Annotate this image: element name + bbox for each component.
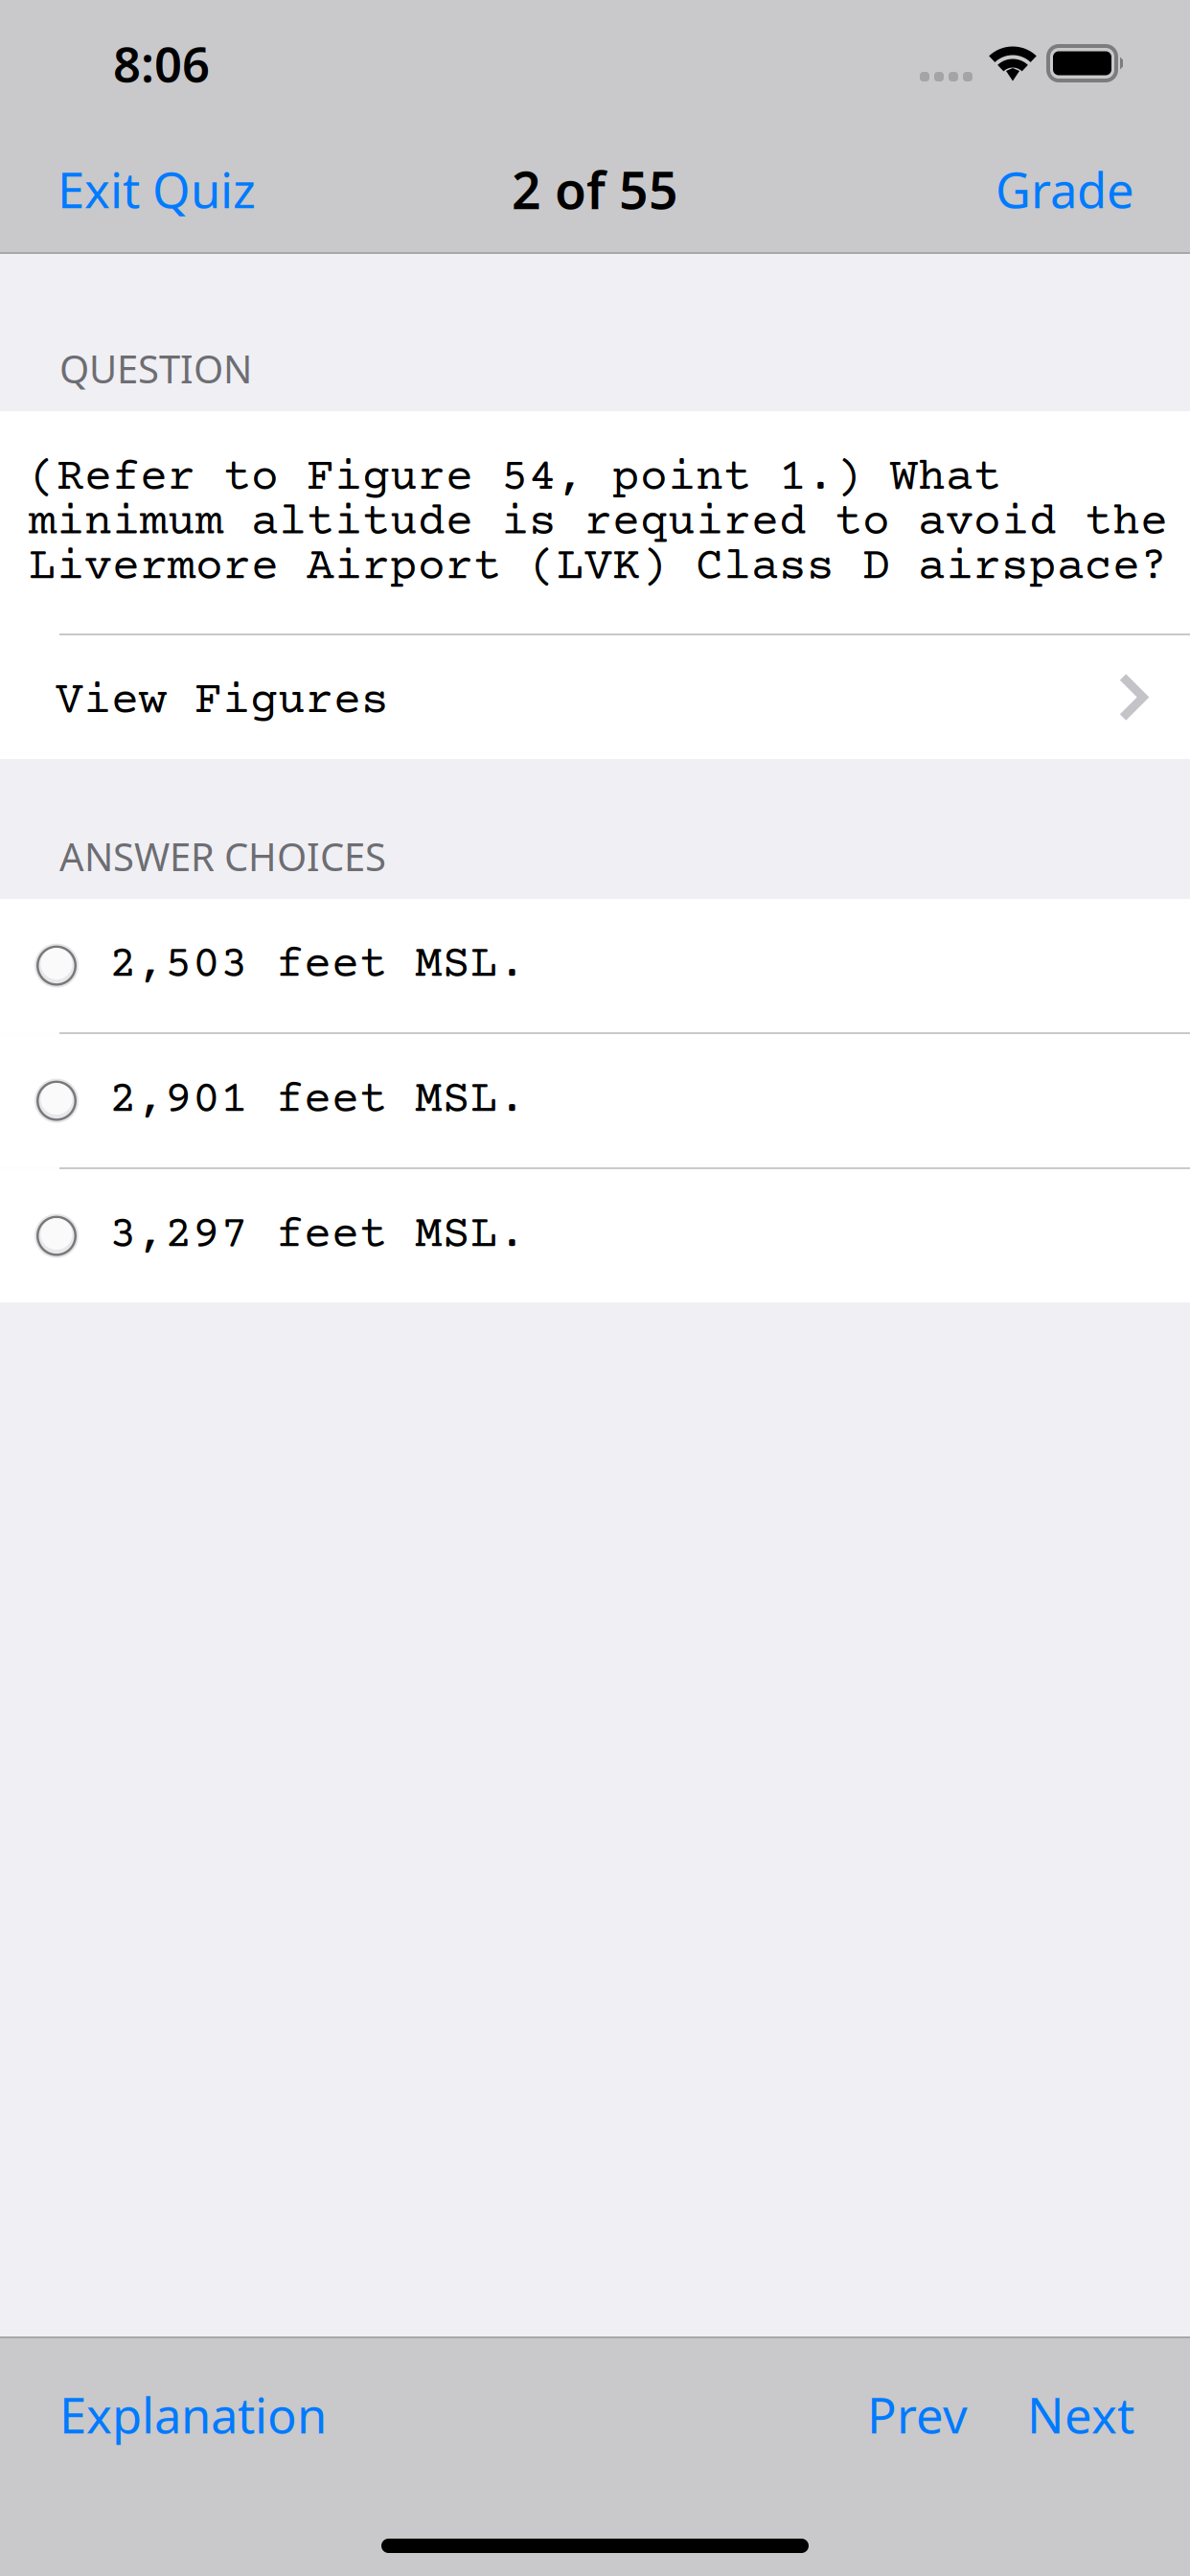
button[interactable]: Next xyxy=(1027,2359,1134,2470)
staticText: ANSWER CHOICES xyxy=(59,831,386,882)
staticText: Next xyxy=(1027,2382,1134,2447)
button[interactable]: 3,297 feet MSL. xyxy=(0,1169,1190,1302)
button[interactable]: Grade xyxy=(976,134,1134,245)
button[interactable]: 2,901 feet MSL. xyxy=(0,1034,1190,1167)
staticText: 3,297 feet MSL. xyxy=(109,1214,526,1258)
staticText: Prev xyxy=(867,2382,968,2447)
button[interactable]: 2,503 feet MSL. xyxy=(0,899,1190,1032)
button[interactable]: Prev xyxy=(867,2359,968,2470)
staticText: (Refer to Figure 54, point 1.) What mini… xyxy=(29,456,1168,590)
staticText: 2 of 55 xyxy=(512,155,678,223)
staticText: QUESTION xyxy=(59,343,252,394)
staticText: 8:06 xyxy=(113,31,210,96)
staticText: View Figures xyxy=(56,680,389,724)
button[interactable]: View Figures xyxy=(0,635,1190,759)
staticText: Exit Quiz xyxy=(57,157,256,222)
button[interactable]: Exit Quiz xyxy=(57,134,275,245)
staticText: Grade xyxy=(995,157,1134,222)
staticText: Explanation xyxy=(59,2382,327,2447)
button[interactable]: Explanation xyxy=(59,2359,327,2470)
staticText: 2,503 feet MSL. xyxy=(109,943,526,988)
staticText: 2,901 feet MSL. xyxy=(109,1078,526,1123)
